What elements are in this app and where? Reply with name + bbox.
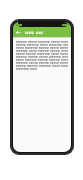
button[interactable] [25, 31, 71, 35]
button[interactable]: Back [15, 29, 22, 36]
